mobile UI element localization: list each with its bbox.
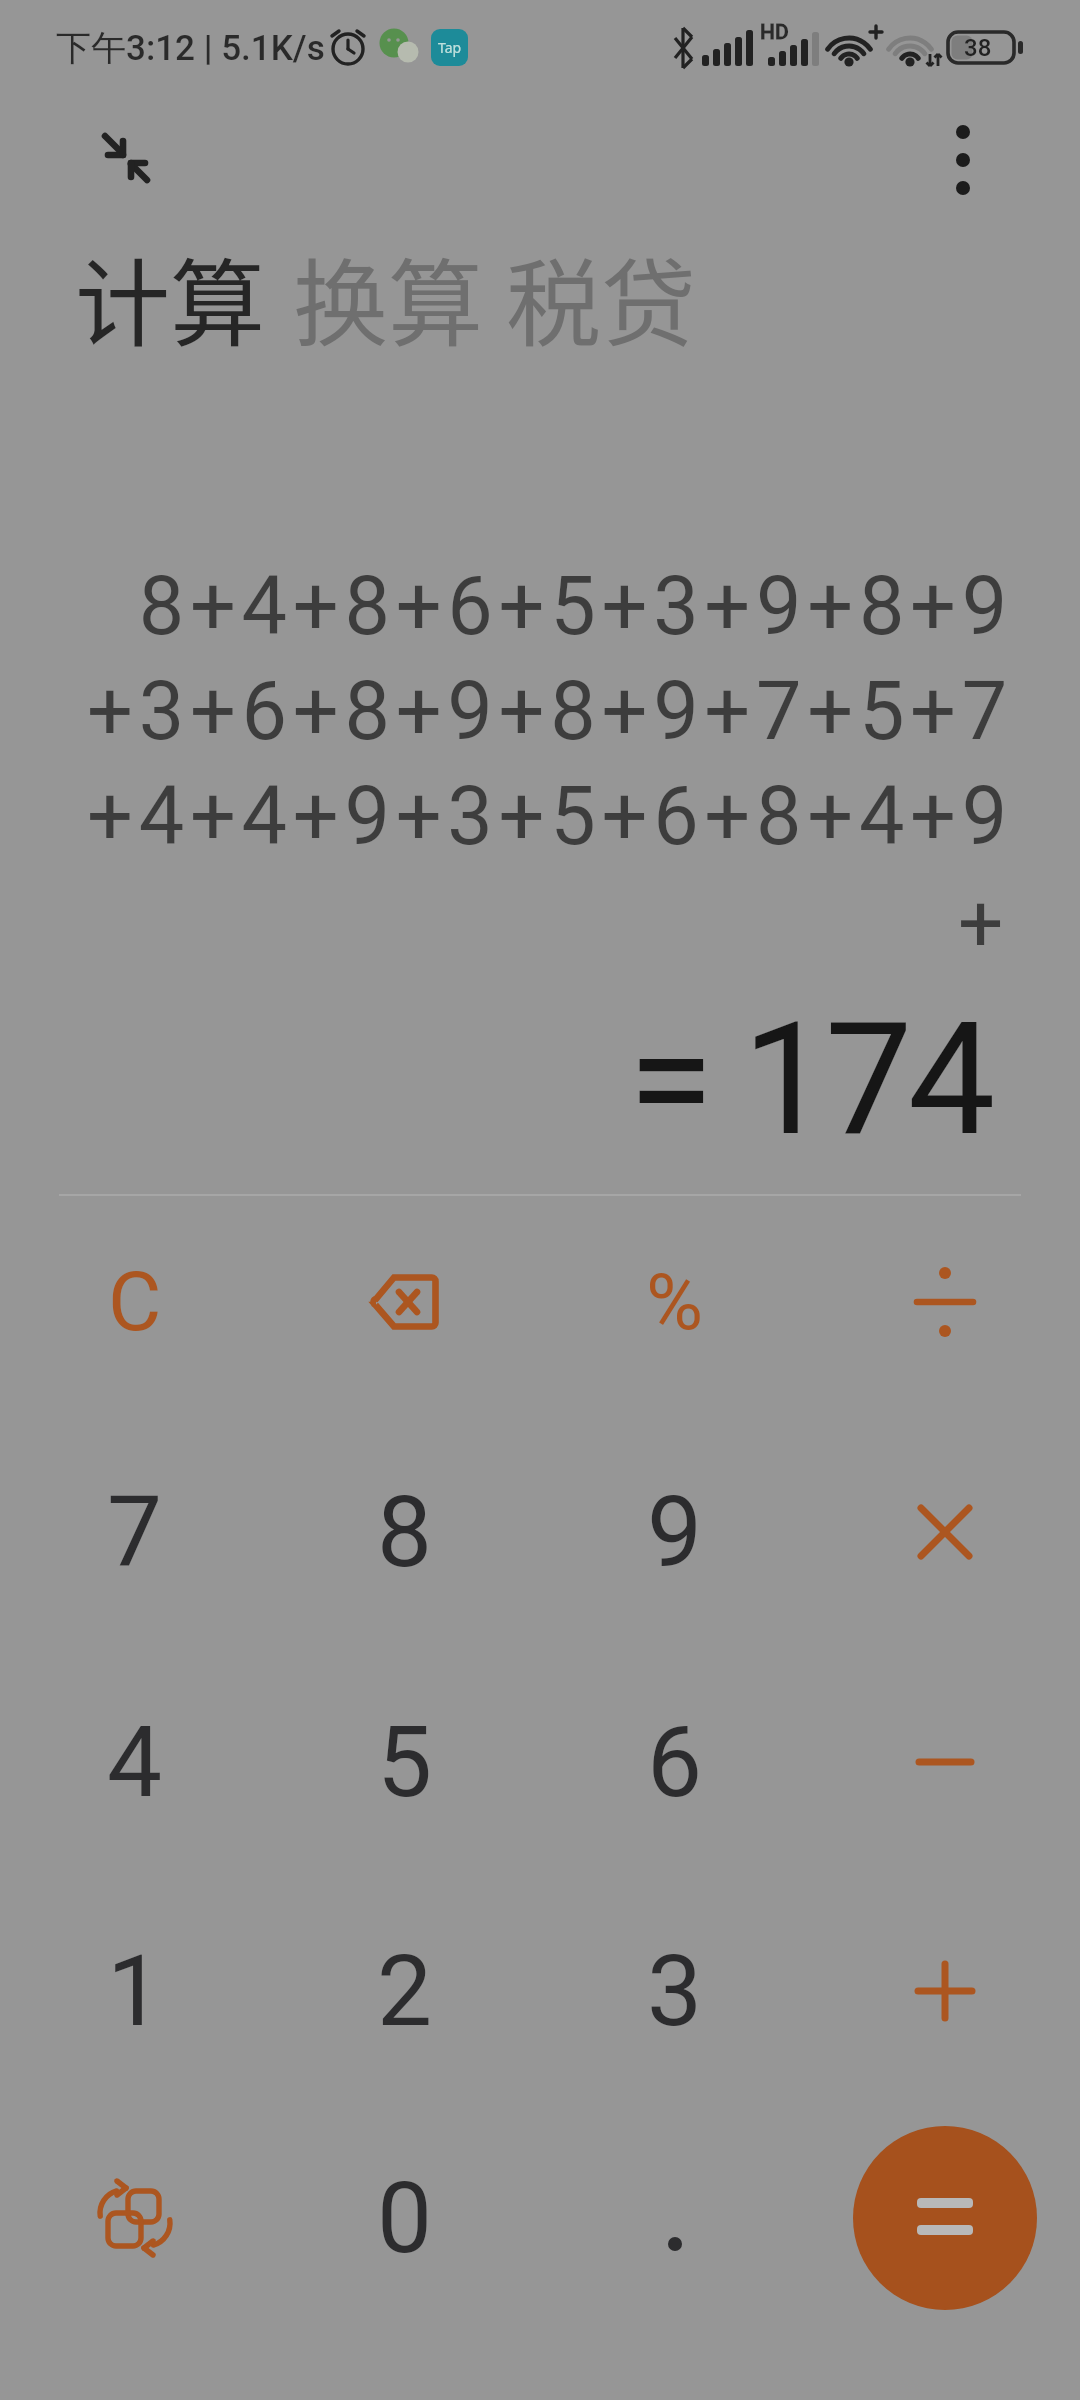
staticText: 2 (377, 1934, 433, 2049)
staticText: 8 (377, 1475, 433, 1590)
button[interactable] (835, 1665, 1055, 1859)
staticText: 9 (647, 1475, 703, 1590)
button[interactable] (835, 1435, 1055, 1629)
button[interactable]: 4 (25, 1665, 245, 1859)
button[interactable]: 9 (565, 1435, 785, 1629)
button[interactable]: 2 (295, 1894, 515, 2088)
button[interactable] (565, 2121, 785, 2315)
button[interactable]: 1 (25, 1894, 245, 2088)
button[interactable] (295, 1205, 515, 1399)
staticText: C (108, 1254, 162, 1350)
button[interactable]: 计算 (75, 229, 266, 367)
button[interactable]: 5 (295, 1665, 515, 1859)
button[interactable]: 8 (295, 1435, 515, 1629)
staticText: 1 (107, 1934, 163, 2049)
staticText: 0 (377, 2161, 433, 2276)
button[interactable]: % (565, 1205, 785, 1399)
button[interactable] (835, 1894, 1055, 2088)
button[interactable] (25, 2121, 245, 2315)
staticText: 38 (964, 34, 992, 62)
staticText: % (646, 1257, 704, 1348)
button[interactable]: 7 (25, 1435, 245, 1629)
staticText: Tap (438, 38, 462, 57)
button[interactable]: 3 (565, 1894, 785, 2088)
staticText: 下午3:12 | 5.1K/s (56, 26, 325, 70)
button[interactable] (936, 118, 992, 202)
button[interactable] (853, 2126, 1037, 2310)
button[interactable]: 0 (295, 2121, 515, 2315)
button[interactable]: 换算 (293, 229, 484, 367)
staticText: + (958, 877, 1004, 971)
staticText: HD (760, 20, 789, 45)
staticText: 8+4+8+6+5+3+9+8+9 +3+6+8+9+8+9+7+5+7 +4+… (87, 559, 1013, 864)
staticText: = 174 (628, 988, 991, 1171)
button[interactable]: 税贷 (506, 229, 697, 367)
button[interactable] (835, 1205, 1055, 1399)
button[interactable]: 6 (565, 1665, 785, 1859)
staticText: 4 (107, 1705, 163, 1820)
staticText: 3 (647, 1934, 703, 2049)
button[interactable]: C (25, 1205, 245, 1399)
staticText: 6 (647, 1705, 703, 1820)
staticText: 7 (107, 1475, 163, 1590)
button[interactable] (90, 122, 166, 198)
staticText: 5 (377, 1705, 433, 1820)
